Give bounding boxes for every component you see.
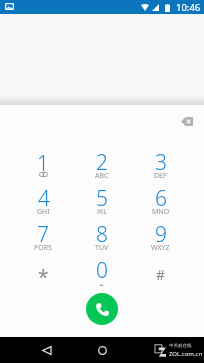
staticText: 3 [155, 148, 167, 177]
staticText: ZOL.com.cn [169, 350, 203, 358]
button[interactable]: 3 [131, 148, 190, 184]
button[interactable]: 8 [72, 220, 131, 256]
button[interactable]: 7 [14, 220, 72, 256]
button[interactable]: # [131, 256, 190, 292]
staticText: 6 [155, 184, 167, 213]
button[interactable]: 9 [131, 220, 190, 256]
staticText: 4 [38, 184, 50, 213]
button[interactable]: Home [90, 338, 114, 362]
staticText: DEF [154, 171, 167, 178]
button[interactable]: 0 [72, 256, 131, 292]
staticText: GHI [37, 207, 50, 214]
staticText: MNO [152, 207, 170, 214]
button[interactable]: 2 [72, 148, 131, 184]
button[interactable]: 4 [14, 184, 72, 220]
staticText: TUV [95, 243, 109, 250]
staticText: # [156, 265, 166, 284]
staticText: 8 [96, 220, 108, 249]
staticText: + [99, 279, 105, 286]
staticText: PQRS [34, 243, 52, 250]
staticText: 7 [37, 220, 49, 249]
staticText: ABC [95, 171, 109, 178]
button[interactable]: 6 [131, 184, 190, 220]
button[interactable]: 1 [14, 148, 72, 184]
staticText: 9 [155, 220, 167, 249]
button[interactable]: Delete [176, 110, 198, 132]
button[interactable]: Back [34, 338, 58, 362]
staticText: 10:46 [176, 1, 201, 14]
button[interactable]: * [14, 256, 72, 292]
staticText: 0 [96, 256, 108, 285]
staticText: WXYZ [151, 243, 170, 250]
staticText: 5 [96, 184, 108, 213]
button[interactable]: 5 [72, 184, 131, 220]
staticText: 2 [96, 148, 108, 177]
staticText: JKL [97, 207, 107, 214]
staticText: * [38, 264, 49, 284]
staticText: 中关村在线 [169, 343, 192, 349]
button[interactable]: Call [86, 293, 118, 325]
staticText: 1 [37, 149, 49, 178]
